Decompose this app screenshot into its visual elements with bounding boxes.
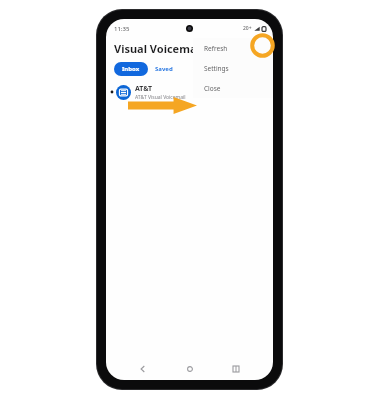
staticText: Close [204,84,221,93]
staticText: 11:35 [114,25,130,33]
button[interactable]: Recent apps [227,360,245,378]
button[interactable]: Home [181,360,199,378]
staticText: Saved [155,65,173,73]
staticText: Settings [204,64,229,73]
button[interactable]: Refresh [204,38,273,58]
button[interactable]: Close [204,78,273,98]
button[interactable]: Settings [204,58,273,78]
staticText: AT&T [135,84,153,94]
staticText: AT&T Visual Voicemail [135,94,186,101]
button[interactable]: Back [134,360,152,378]
other: More options highlighted [250,33,275,58]
button[interactable]: Saved [148,62,180,76]
button[interactable]: Inbox [114,62,148,76]
staticText: Refresh [204,44,228,53]
staticText: Inbox [122,65,140,73]
button[interactable]: More options [251,41,267,57]
staticText: Visual Voicemail [114,41,204,56]
button[interactable]: AT&T [106,79,273,105]
staticText: 20+ [243,25,252,32]
